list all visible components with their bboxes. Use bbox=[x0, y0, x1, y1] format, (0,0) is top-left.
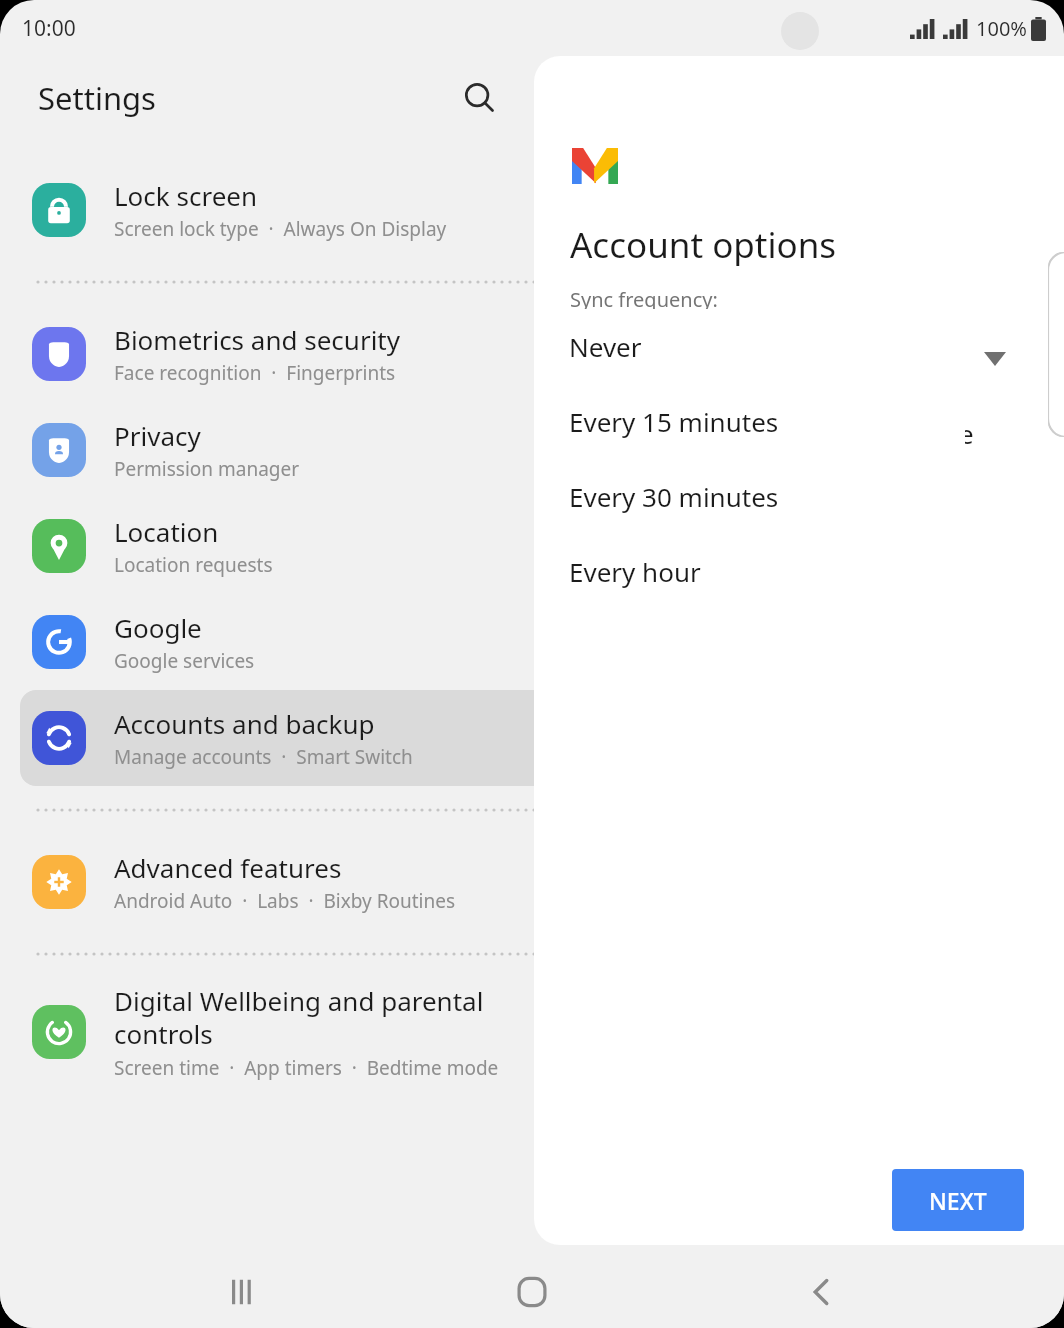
staticText: Google bbox=[114, 610, 202, 645]
staticText: Android Auto · Labs · Bixby Routines bbox=[114, 888, 456, 914]
staticText: Face recognition · Fingerprints bbox=[114, 360, 396, 386]
staticText: Manage accounts · Smart Switch bbox=[114, 744, 413, 770]
staticText: Never bbox=[569, 329, 642, 364]
button[interactable]: Accounts and backup bbox=[20, 690, 1044, 786]
staticText: 10:00 bbox=[22, 14, 76, 43]
staticText: Digital Wellbeing and parental controls bbox=[114, 983, 484, 1052]
button[interactable]: Sync frequency dropdown bbox=[570, 326, 1010, 392]
staticText: Biometrics and security bbox=[114, 322, 401, 357]
staticText: Screen time · App timers · Bedtime mode bbox=[114, 1055, 499, 1081]
button[interactable]: NEXT bbox=[892, 1169, 1024, 1231]
staticText: Accounts and backup bbox=[114, 706, 375, 741]
button[interactable]: Lock screen bbox=[20, 162, 1044, 258]
button[interactable]: Recent apps bbox=[194, 1260, 290, 1324]
staticText: Settings bbox=[38, 77, 156, 119]
staticText: Location bbox=[114, 514, 219, 549]
staticText: Sync frequency: bbox=[570, 286, 718, 313]
staticText: Lock screen bbox=[114, 178, 258, 213]
button[interactable]: Privacy bbox=[20, 402, 1044, 498]
button[interactable]: Home bbox=[484, 1260, 580, 1324]
button[interactable]: Never bbox=[555, 309, 965, 384]
staticText: Every 30 minutes bbox=[569, 479, 779, 514]
button[interactable]: Google bbox=[20, 594, 1044, 690]
staticText: Screen lock type · Always On Display bbox=[114, 216, 447, 242]
staticText: Account options bbox=[570, 221, 837, 269]
staticText: 100% bbox=[976, 15, 1027, 42]
button[interactable]: Every hour bbox=[555, 534, 965, 609]
button[interactable]: Every 30 minutes bbox=[555, 459, 965, 534]
staticText: Permission manager bbox=[114, 456, 300, 482]
button[interactable]: Location bbox=[20, 498, 1044, 594]
button[interactable]: Search bbox=[447, 65, 513, 131]
button[interactable]: Digital Wellbeing and parental controls bbox=[20, 978, 1044, 1086]
button[interactable]: Every 15 minutes bbox=[555, 384, 965, 459]
staticText: Advanced features bbox=[114, 850, 342, 885]
staticText: Never bbox=[570, 342, 643, 377]
staticText: Location requests bbox=[114, 552, 273, 578]
staticText: Every 15 minutes bbox=[569, 404, 779, 439]
staticText: Every hour bbox=[569, 554, 701, 589]
staticText: Privacy bbox=[114, 418, 201, 453]
staticText: e bbox=[959, 416, 974, 451]
button[interactable]: Biometrics and security bbox=[20, 306, 1044, 402]
button[interactable]: Advanced features bbox=[20, 834, 1044, 930]
button[interactable]: Back bbox=[774, 1260, 870, 1324]
staticText: Google services bbox=[114, 648, 255, 674]
staticText: NEXT bbox=[929, 1185, 987, 1216]
